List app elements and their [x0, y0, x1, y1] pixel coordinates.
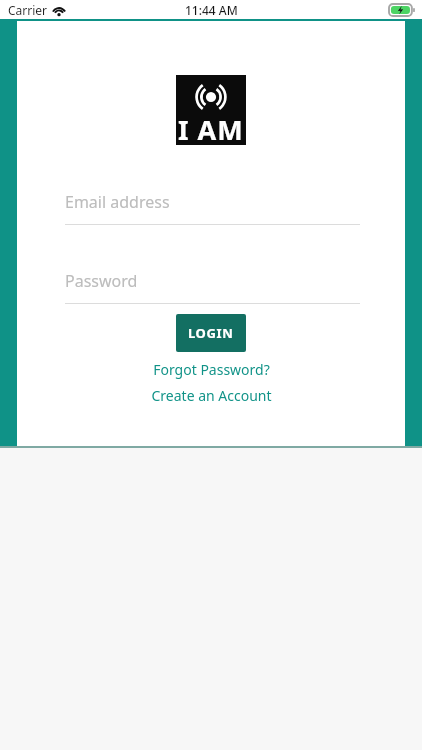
other: Battery charging	[389, 4, 415, 16]
other: Broadcast	[187, 81, 235, 113]
button[interactable]: Email address	[65, 191, 360, 225]
button[interactable]: Password	[65, 270, 360, 304]
button[interactable]: LOGIN	[176, 314, 246, 352]
staticText: Forgot Password?	[153, 360, 270, 379]
staticText: I AM	[178, 111, 244, 148]
staticText: LOGIN	[188, 324, 234, 342]
staticText: Carrier	[8, 2, 48, 18]
staticText: Email address	[65, 191, 170, 213]
button[interactable]: Forgot Password?	[147, 358, 276, 381]
staticText: Create an Account	[151, 386, 272, 405]
button[interactable]: Create an Account	[145, 384, 278, 407]
staticText: Password	[65, 270, 138, 292]
staticText: 11:44 AM	[185, 2, 238, 18]
other: Wi-Fi	[52, 5, 66, 16]
